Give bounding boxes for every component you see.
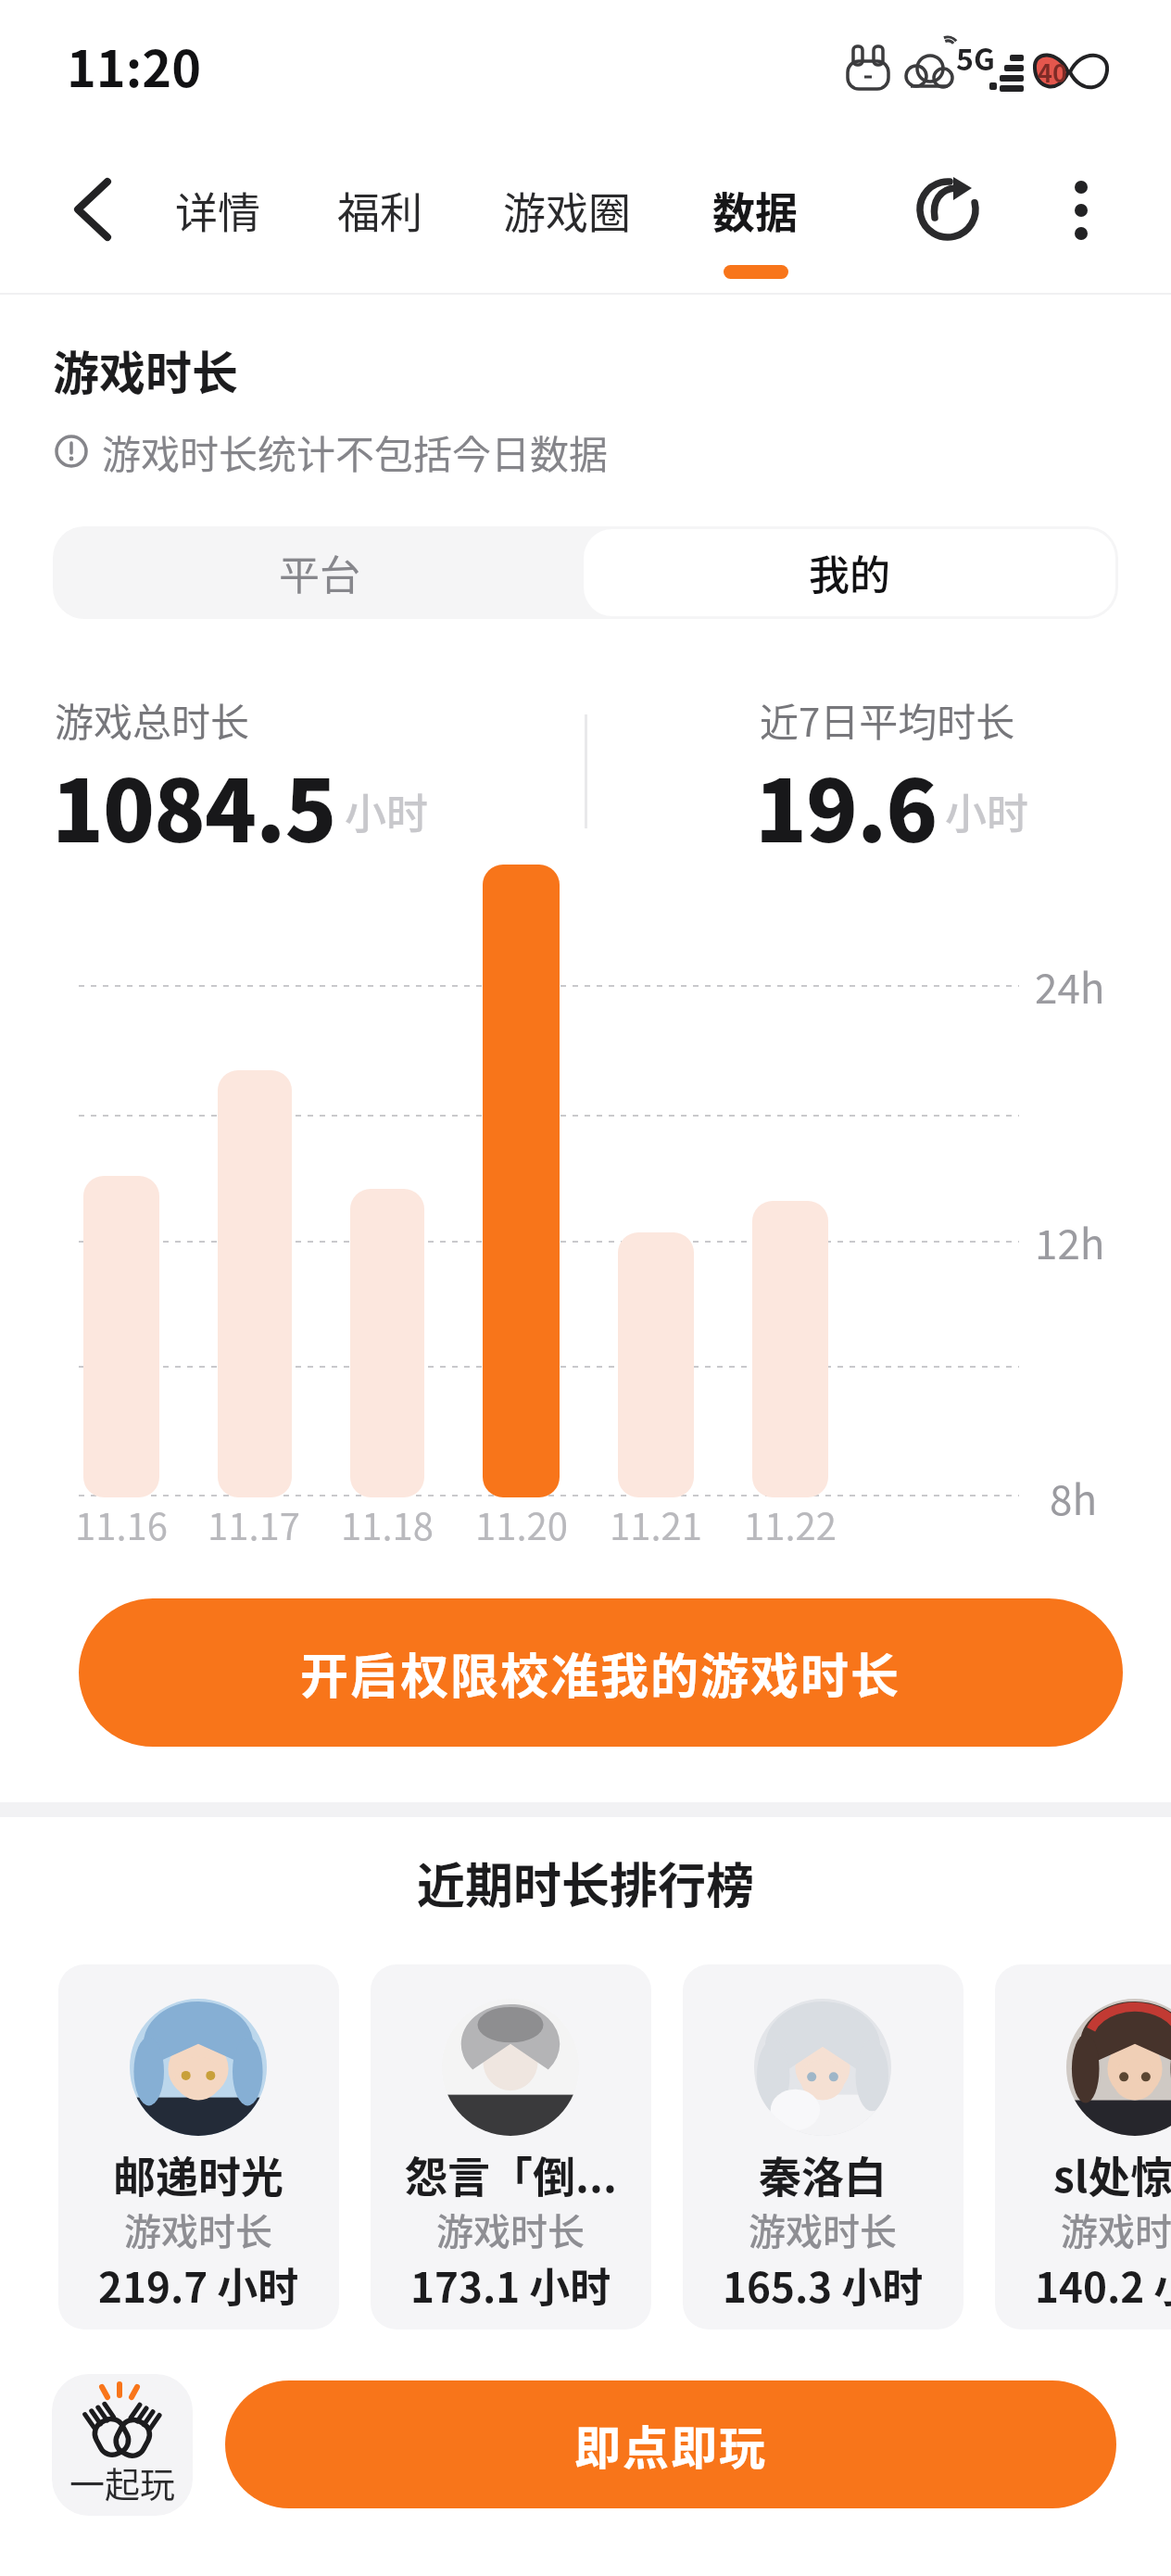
staticText: 数据 xyxy=(712,179,798,241)
button[interactable]: 详情 xyxy=(153,167,283,252)
staticText: 11.17 xyxy=(208,1497,300,1551)
staticText: 40 xyxy=(1038,54,1067,90)
staticText: 24h xyxy=(1035,956,1105,1016)
staticText: 165.3 小时 xyxy=(723,2255,924,2315)
staticText: 平台 xyxy=(279,543,360,602)
staticText: 我的 xyxy=(809,543,890,602)
staticText: 游戏时长 xyxy=(436,2203,585,2256)
staticText: 游戏时长 xyxy=(53,336,238,403)
staticText: 140.2 小时 xyxy=(1035,2255,1171,2315)
staticText: 邮递时光 xyxy=(113,2143,283,2205)
button[interactable] xyxy=(913,175,985,244)
staticText: 秦洛白 xyxy=(759,2143,887,2205)
staticText: sl处惊蛰 xyxy=(1053,2143,1171,2205)
staticText: 219.7 小时 xyxy=(98,2255,299,2315)
staticText: 5G xyxy=(956,36,995,79)
staticText: 19.6 xyxy=(755,743,938,866)
button[interactable] xyxy=(683,1964,963,2330)
staticText: 11.18 xyxy=(341,1497,434,1551)
button[interactable] xyxy=(371,1964,651,2330)
button[interactable] xyxy=(58,1964,339,2330)
staticText: 游戏时长统计不包括今日数据 xyxy=(102,423,609,480)
button[interactable] xyxy=(995,1964,1171,2330)
staticText: 11.20 xyxy=(475,1497,568,1551)
staticText: 11.21 xyxy=(610,1497,702,1551)
staticText: 11.22 xyxy=(744,1497,837,1551)
button[interactable] xyxy=(52,2374,193,2516)
staticText: 怨言「倒... xyxy=(405,2143,617,2205)
button[interactable]: 开启权限校准我的游戏时长 xyxy=(79,1598,1123,1747)
staticText: 游戏时长 xyxy=(124,2203,272,2256)
staticText: 8h xyxy=(1050,1468,1098,1527)
staticText: 173.1 小时 xyxy=(410,2255,611,2315)
button[interactable] xyxy=(584,529,1115,616)
button[interactable] xyxy=(61,172,126,246)
staticText: 游戏总时长 xyxy=(55,691,250,748)
staticText: 11.16 xyxy=(75,1497,168,1551)
button[interactable]: 游戏圈 xyxy=(474,167,660,252)
staticText: 11:20 xyxy=(67,29,201,101)
staticText: 游戏圈 xyxy=(503,179,631,241)
staticText: 12h xyxy=(1035,1212,1105,1271)
staticText: 小时 xyxy=(945,781,1029,841)
staticText: 即点即玩 xyxy=(574,2411,767,2478)
button[interactable] xyxy=(1051,167,1111,252)
staticText: 游戏时长 xyxy=(749,2203,897,2256)
staticText: 开启权限校准我的游戏时长 xyxy=(300,1638,901,1708)
staticText: 近7日平均时长 xyxy=(760,691,1015,748)
staticText: 一起玩 xyxy=(69,2456,176,2507)
staticText: 近期时长排行榜 xyxy=(417,1848,755,1917)
staticText: 福利 xyxy=(337,179,422,241)
staticText: 1084.5 xyxy=(52,743,336,866)
staticText: 小时 xyxy=(345,781,429,841)
staticText: 详情 xyxy=(175,179,260,241)
button[interactable] xyxy=(53,526,585,619)
button[interactable]: 即点即玩 xyxy=(225,2380,1116,2508)
button[interactable]: 数据 xyxy=(690,167,820,252)
button[interactable]: 福利 xyxy=(315,167,445,252)
staticText: 游戏时长 xyxy=(1061,2203,1171,2256)
